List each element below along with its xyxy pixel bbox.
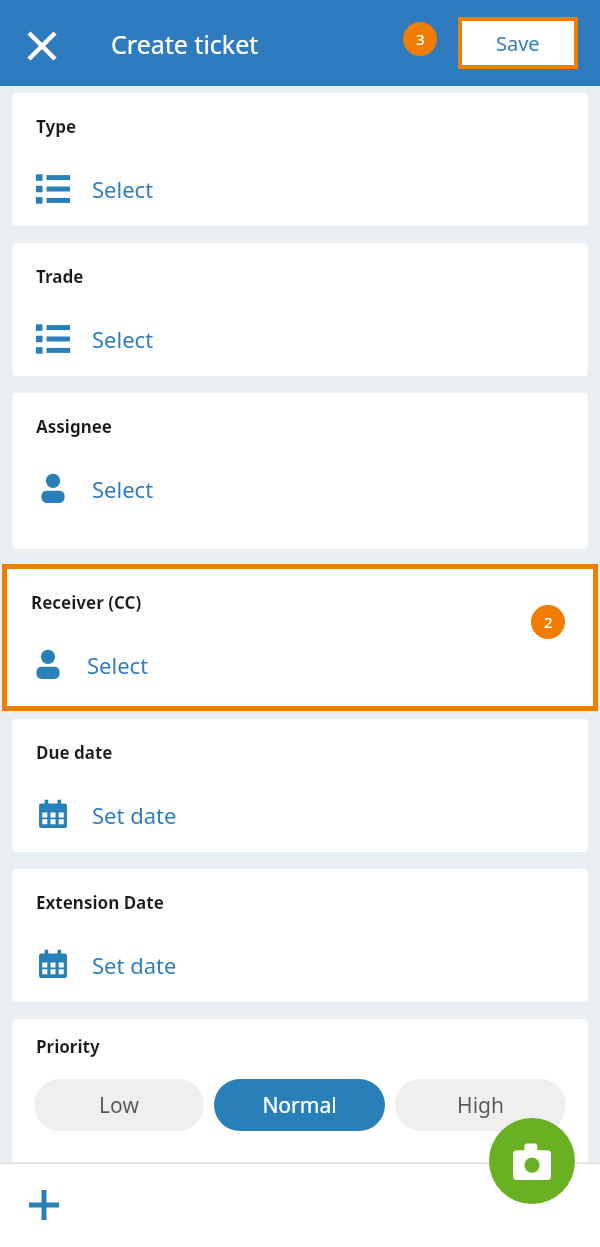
button[interactable]: Add — [22, 1183, 66, 1227]
button[interactable]: Receiver (CC) — [7, 569, 593, 706]
staticText: Priority — [36, 1035, 100, 1058]
button[interactable]: Save — [462, 21, 574, 65]
staticText: Set date — [92, 800, 177, 830]
button[interactable]: Take photo — [489, 1118, 575, 1204]
staticText: Extension Date — [36, 891, 164, 914]
staticText: 2 — [544, 612, 553, 632]
staticText: Normal — [262, 1091, 337, 1120]
staticText: Select — [92, 324, 154, 354]
staticText: Save — [496, 30, 540, 57]
button[interactable]: Trade — [12, 243, 588, 376]
staticText: High — [457, 1091, 504, 1120]
button[interactable]: Extension Date — [12, 869, 588, 1002]
staticText: Assignee — [36, 415, 113, 438]
staticText: 3 — [416, 29, 425, 49]
staticText: Set date — [92, 950, 177, 980]
button[interactable]: Assignee — [12, 393, 588, 549]
button[interactable]: Type — [12, 93, 588, 226]
staticText: Due date — [36, 741, 113, 764]
staticText: Type — [36, 115, 77, 138]
staticText: Low — [99, 1091, 139, 1120]
button[interactable]: High — [395, 1079, 566, 1131]
staticText: Select — [87, 650, 149, 680]
staticText: Select — [92, 474, 154, 504]
staticText: Trade — [36, 265, 84, 288]
staticText: Create ticket — [111, 27, 259, 61]
staticText: Select — [92, 174, 154, 204]
staticText: Receiver (CC) — [31, 591, 142, 614]
button[interactable]: Normal — [214, 1079, 385, 1131]
button[interactable]: Due date — [12, 719, 588, 852]
button[interactable]: Low — [34, 1079, 204, 1131]
button[interactable]: Close — [20, 24, 64, 68]
